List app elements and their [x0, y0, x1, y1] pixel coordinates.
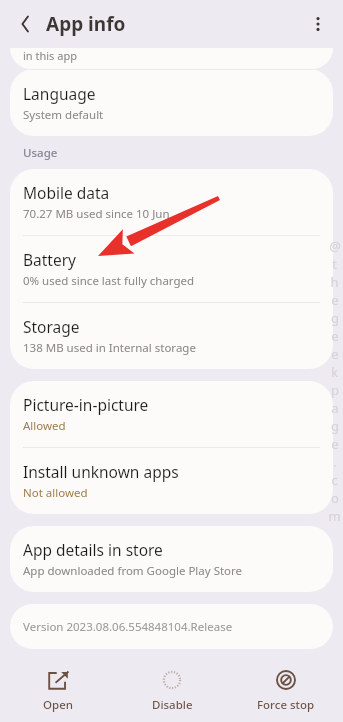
staticText: Usage — [23, 145, 58, 161]
button[interactable]: Mobile data — [10, 169, 333, 235]
button[interactable]: Back — [8, 7, 42, 41]
button[interactable]: More options — [301, 7, 335, 41]
button[interactable]: Picture-in-picture — [10, 381, 333, 447]
staticText: m — [328, 507, 341, 525]
staticText: Allowed — [23, 418, 66, 434]
staticText: e — [331, 291, 339, 309]
button[interactable]: Disable — [115, 660, 229, 722]
button[interactable]: in this app — [10, 48, 333, 69]
button[interactable]: Language — [10, 70, 333, 136]
button[interactable]: Battery — [10, 236, 333, 302]
staticText: e — [331, 327, 339, 345]
staticText: Version 2023.08.06.554848104.Release — [23, 619, 233, 635]
staticText: Battery — [23, 249, 77, 270]
staticText: a — [331, 399, 339, 417]
button[interactable]: Open — [0, 660, 115, 722]
staticText: t — [332, 255, 337, 273]
staticText: 138 MB used in Internal storage — [23, 340, 196, 356]
staticText: Mobile data — [23, 182, 110, 203]
button[interactable]: Force stop — [229, 660, 343, 722]
staticText: App downloaded from Google Play Store — [23, 563, 243, 579]
button[interactable]: App details in store — [10, 526, 333, 592]
staticText: c — [331, 471, 338, 489]
staticText: Install unknown apps — [23, 461, 179, 482]
button[interactable]: Storage — [10, 303, 333, 369]
staticText: System default — [23, 107, 104, 123]
staticText: h — [330, 273, 339, 291]
staticText: 0% used since last fully charged — [23, 273, 195, 289]
staticText: 70.27 MB used since 10 Jun — [23, 206, 170, 222]
button[interactable]: Install unknown apps — [10, 448, 333, 514]
staticText: e — [331, 345, 339, 363]
staticText: Disable — [152, 697, 193, 713]
staticText: g — [331, 309, 339, 327]
staticText: . — [333, 453, 337, 471]
staticText: o — [331, 489, 339, 507]
staticText: App info — [46, 11, 126, 37]
staticText: Language — [23, 83, 96, 104]
staticText: App details in store — [23, 539, 163, 560]
staticText: in this app — [23, 48, 77, 63]
staticText: g — [331, 417, 339, 435]
staticText: Force stop — [257, 697, 315, 713]
staticText: p — [331, 381, 339, 399]
staticText: e — [331, 435, 339, 453]
staticText: Not allowed — [23, 485, 88, 501]
staticText: k — [331, 363, 338, 381]
staticText: Storage — [23, 316, 80, 337]
staticText: Open — [43, 697, 73, 713]
staticText: @ — [329, 237, 341, 255]
staticText: Picture-in-picture — [23, 394, 149, 415]
